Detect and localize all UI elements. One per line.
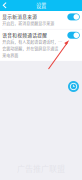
button[interactable]: Back [0, 0, 10, 11]
staticText: 语音和视频通话提醒 [2, 31, 47, 38]
staticText: 显示新消息来源 [2, 13, 37, 20]
staticText: 开启后，新消息提醒显示来源 [2, 21, 54, 27]
staticText: 开启后，有人发起语音通话时，手机 [2, 39, 63, 45]
staticText: 会震动提醒，并在锁屏显示通话 [2, 46, 58, 52]
button[interactable]: 显示新消息来源 [0, 11, 82, 29]
staticText: 广告推广联盟 [17, 162, 65, 174]
staticText: 来电界面 [2, 53, 18, 59]
button[interactable]: 语音和视频通话提醒 [0, 29, 82, 61]
button[interactable]: Recent calls [68, 81, 79, 92]
staticText: 设置 [36, 2, 46, 9]
